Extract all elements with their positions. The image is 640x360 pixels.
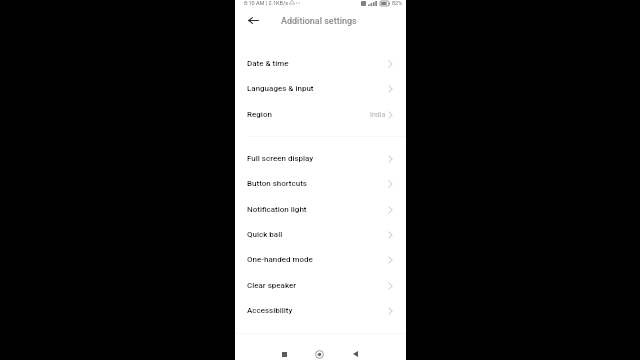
staticText: Full screen display: [247, 154, 314, 163]
staticText: Date & time: [247, 59, 289, 68]
staticText: Accessibility: [247, 306, 293, 315]
staticText: Languages & input: [247, 84, 314, 93]
button[interactable]: Full screen display: [235, 146, 406, 171]
button[interactable]: Date & time: [235, 51, 406, 76]
staticText: Quick ball: [247, 230, 283, 239]
button[interactable]: Region: [235, 102, 406, 127]
button[interactable]: Recent apps: [275, 345, 293, 360]
button[interactable]: Back: [244, 11, 262, 29]
staticText: Clear speaker: [247, 281, 297, 290]
button[interactable]: Accessibility: [235, 298, 406, 323]
button[interactable]: Back: [346, 345, 364, 360]
button[interactable]: Quick ball: [235, 222, 406, 247]
staticText: 8:10 AM | 2.1KB/s: [244, 0, 289, 6]
staticText: Region: [247, 110, 272, 119]
staticText: Button shortcuts: [247, 179, 307, 188]
button[interactable]: Clear speaker: [235, 273, 406, 298]
staticText: Notification light: [247, 205, 307, 214]
button[interactable]: One-handed mode: [235, 247, 406, 272]
staticText: One-handed mode: [247, 255, 313, 264]
staticText: Additional settings: [281, 16, 357, 27]
staticText: India: [370, 111, 386, 119]
button[interactable]: Languages & input: [235, 76, 406, 101]
button[interactable]: Home: [310, 345, 328, 360]
button[interactable]: Button shortcuts: [235, 171, 406, 196]
button[interactable]: Notification light: [235, 197, 406, 222]
staticText: 82%: [392, 0, 403, 6]
